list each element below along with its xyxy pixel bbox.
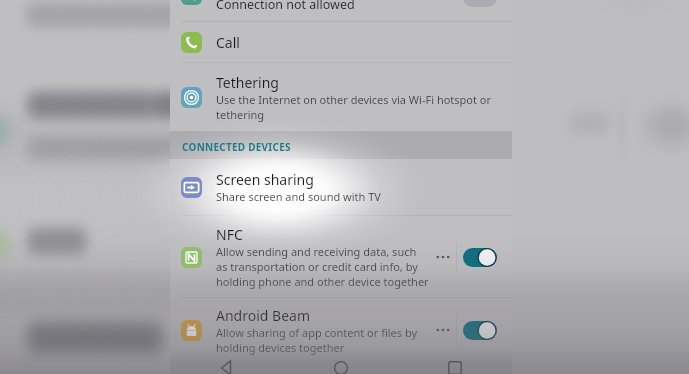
button[interactable]: NFC: [170, 216, 512, 298]
button[interactable]: Connection not allowed: [170, 0, 512, 21]
staticText: Android Beam: [216, 306, 310, 325]
button[interactable]: Toggle on: [463, 248, 497, 267]
button[interactable]: Back: [170, 361, 284, 374]
button[interactable]: Screen sharing: [170, 159, 512, 215]
staticText: Share screen and sound with TV: [216, 189, 381, 204]
button[interactable]: Home: [284, 361, 398, 374]
staticText: Call: [216, 33, 240, 52]
staticText: NFC: [216, 225, 243, 244]
staticText: Connection not allowed: [216, 0, 355, 13]
staticText: Tethering: [216, 73, 279, 92]
button[interactable]: More options: [432, 247, 454, 267]
button[interactable]: Toggle on: [463, 321, 497, 340]
button[interactable]: Recents: [398, 361, 512, 374]
staticText: Screen sharing: [216, 170, 314, 189]
staticText: Use the Internet on other devices via Wi…: [216, 92, 495, 122]
button[interactable]: Android Beam: [170, 299, 512, 361]
button[interactable]: More options: [432, 320, 454, 340]
staticText: Allow sharing of app content or files by…: [216, 325, 430, 355]
staticText: CONNECTED DEVICES: [182, 140, 291, 154]
button[interactable]: Call: [170, 22, 512, 62]
staticText: Allow sending and receiving data, such a…: [216, 244, 430, 289]
button[interactable]: Tethering: [170, 63, 512, 131]
